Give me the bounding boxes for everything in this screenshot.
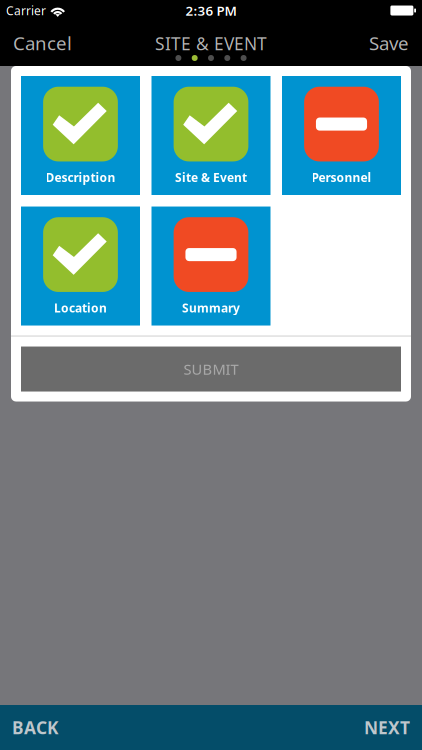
staticText: Save — [369, 31, 409, 55]
button[interactable]: Save — [356, 26, 422, 60]
button[interactable]: BACK — [0, 705, 71, 750]
staticText: BACK — [12, 716, 59, 739]
button[interactable]: NEXT — [352, 705, 422, 750]
staticText: Cancel — [13, 31, 72, 55]
staticText: Summary — [182, 300, 240, 316]
staticText: Site & Event — [175, 169, 247, 185]
button[interactable]: Summary — [151, 206, 270, 325]
staticText: Personnel — [311, 169, 371, 185]
staticText: Location — [54, 300, 107, 316]
staticText: Carrier — [6, 2, 46, 18]
button[interactable]: Description — [21, 76, 140, 195]
button[interactable]: Site & Event — [151, 76, 270, 195]
staticText: Description — [45, 169, 115, 185]
button[interactable]: Cancel — [0, 26, 85, 60]
button[interactable]: Personnel — [282, 76, 401, 195]
staticText: NEXT — [364, 716, 410, 739]
staticText: SUBMIT — [183, 359, 238, 379]
button[interactable]: Location — [21, 206, 140, 325]
staticText: SITE & EVENT — [155, 32, 267, 55]
staticText: 2:36 PM — [185, 2, 236, 19]
button[interactable]: SUBMIT — [21, 346, 401, 391]
